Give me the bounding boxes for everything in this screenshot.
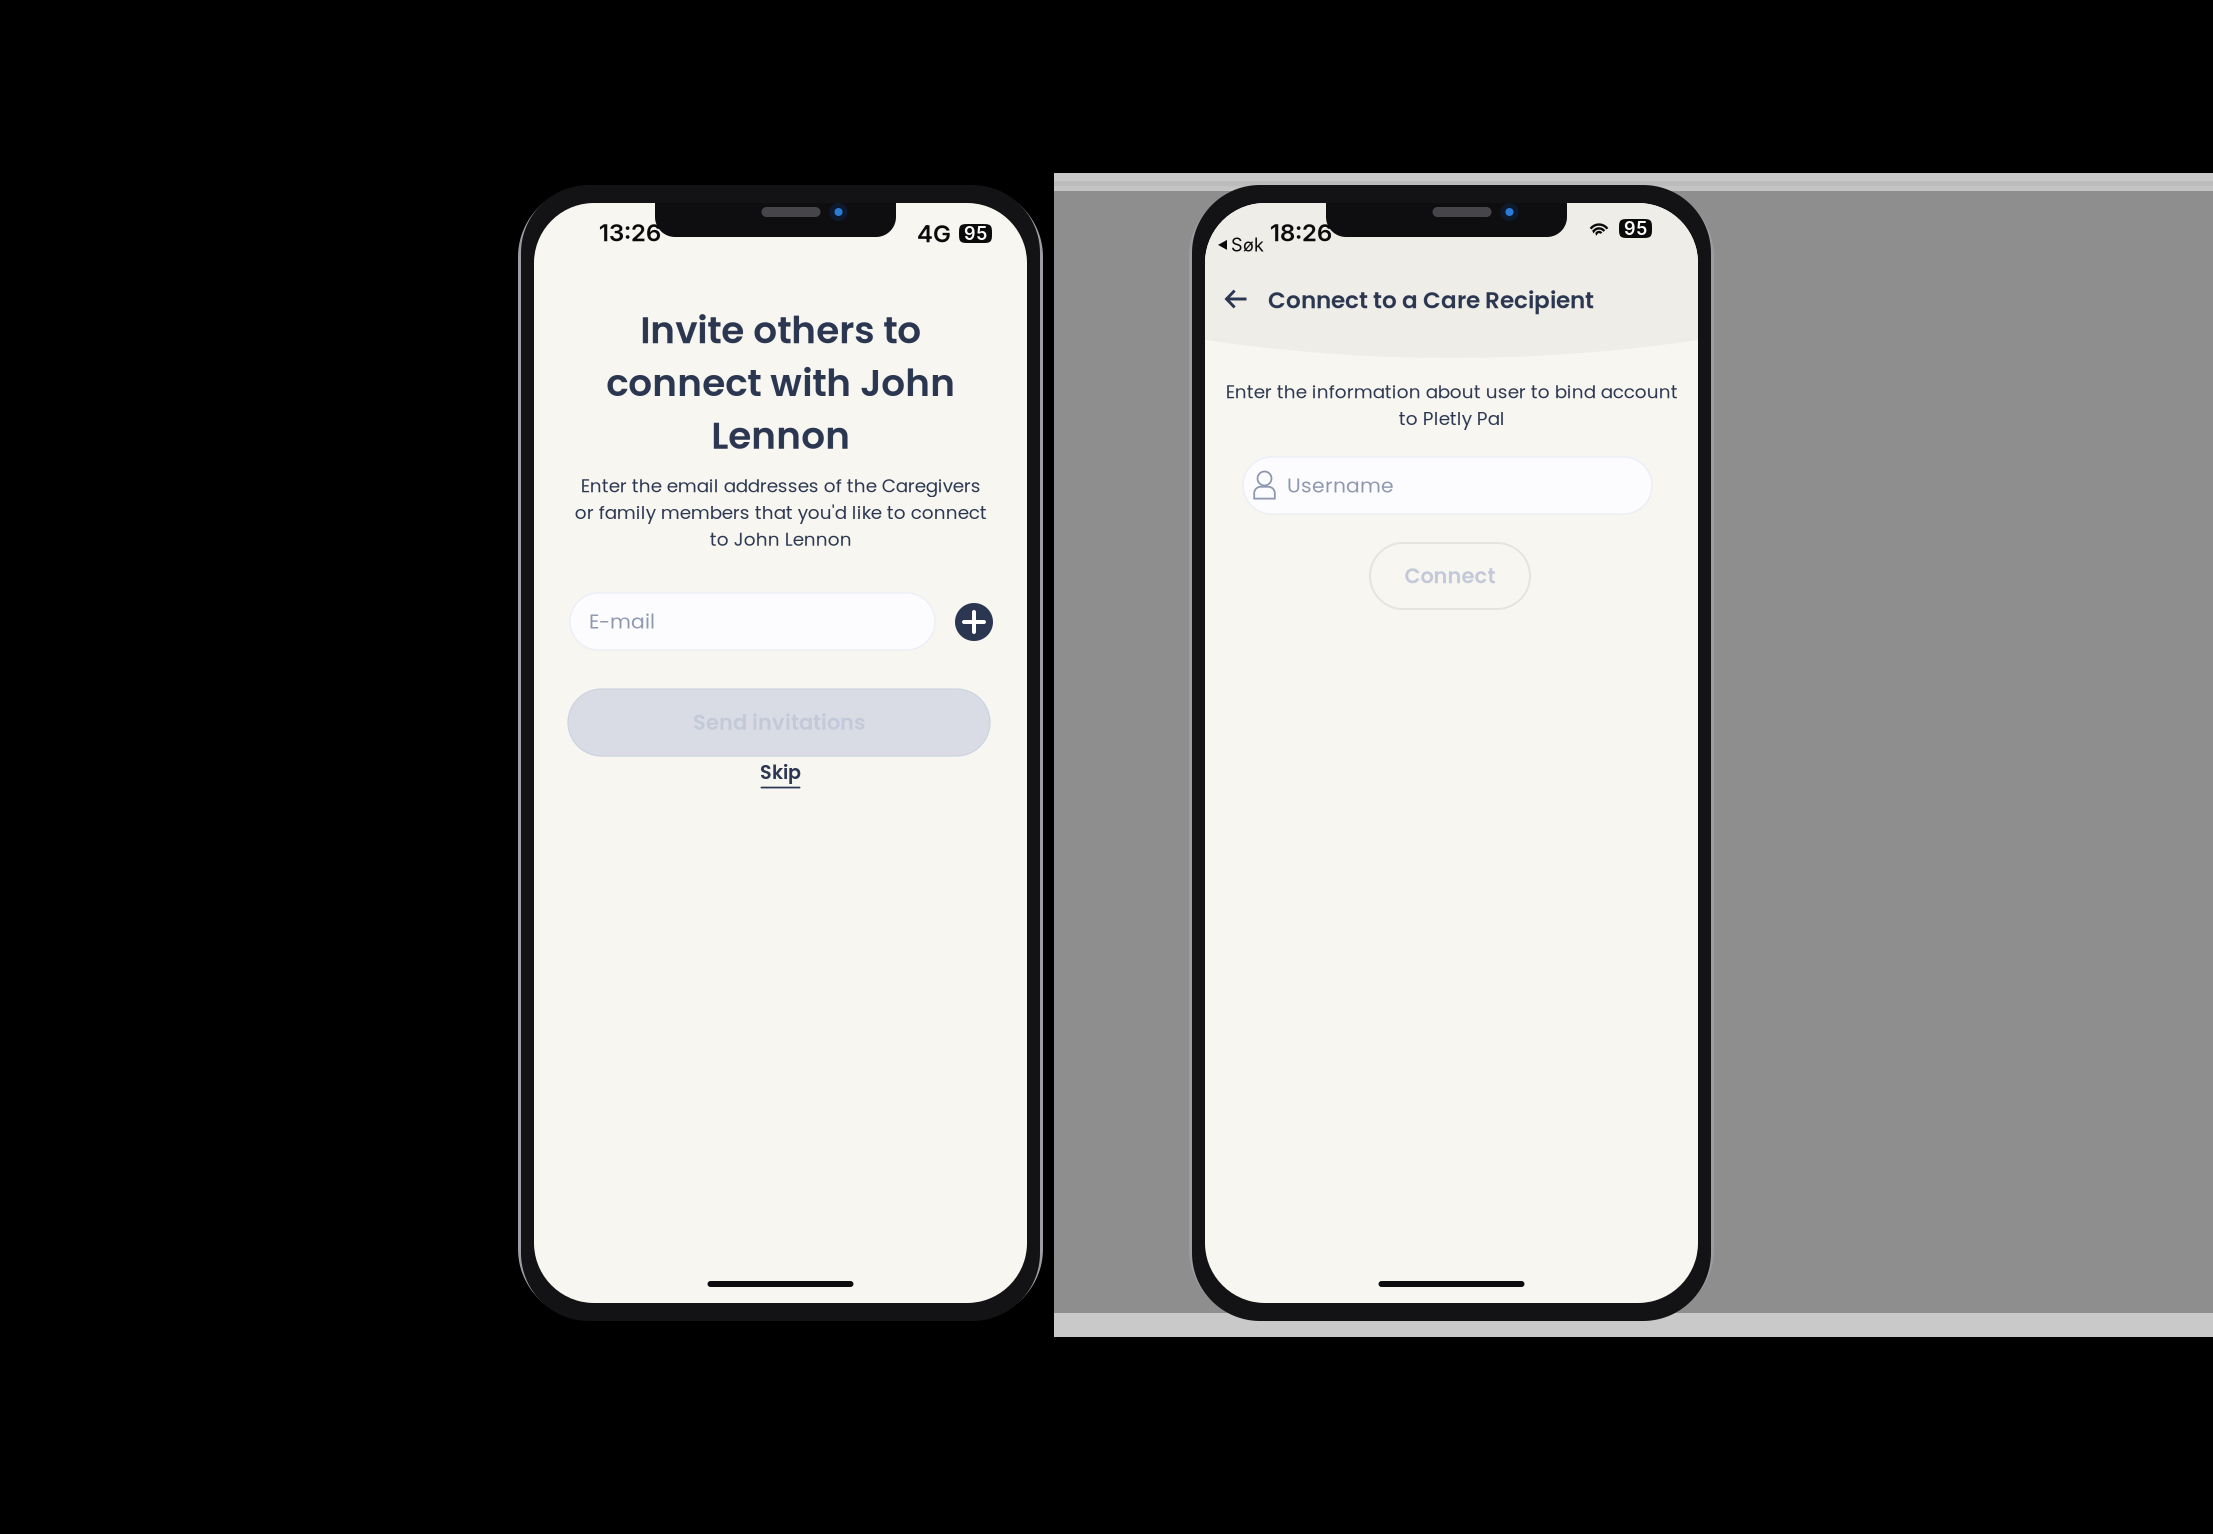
staticText: Send invitations (693, 708, 865, 737)
button[interactable]: Skip (740, 759, 820, 788)
staticText: 4G (917, 219, 951, 248)
button[interactable]: E-mail (570, 593, 935, 650)
button[interactable]: Send invitations (568, 689, 990, 756)
staticText: Invite others to connect with John Lenno… (606, 304, 955, 462)
staticText: Enter the information about user to bind… (1225, 379, 1677, 431)
staticText: Connect (1404, 561, 1495, 591)
button[interactable]: Connect (1370, 543, 1530, 609)
staticText: Søk (1231, 234, 1264, 256)
staticText: E-mail (589, 607, 655, 636)
staticText: 18:26 (1270, 218, 1332, 247)
staticText: Skip (760, 759, 801, 786)
button[interactable]: Add e-mail (955, 603, 993, 641)
button[interactable]: Back (1225, 288, 1248, 310)
staticText: 95 (1624, 218, 1647, 239)
staticText: Connect to a Care Recipient (1268, 284, 1594, 316)
staticText: Enter the email addresses of the Caregiv… (574, 473, 986, 552)
staticText: Username (1287, 471, 1394, 500)
button[interactable]: Username (1243, 457, 1652, 514)
staticText: 13:26 (599, 218, 661, 247)
staticText: 95 (964, 223, 987, 244)
